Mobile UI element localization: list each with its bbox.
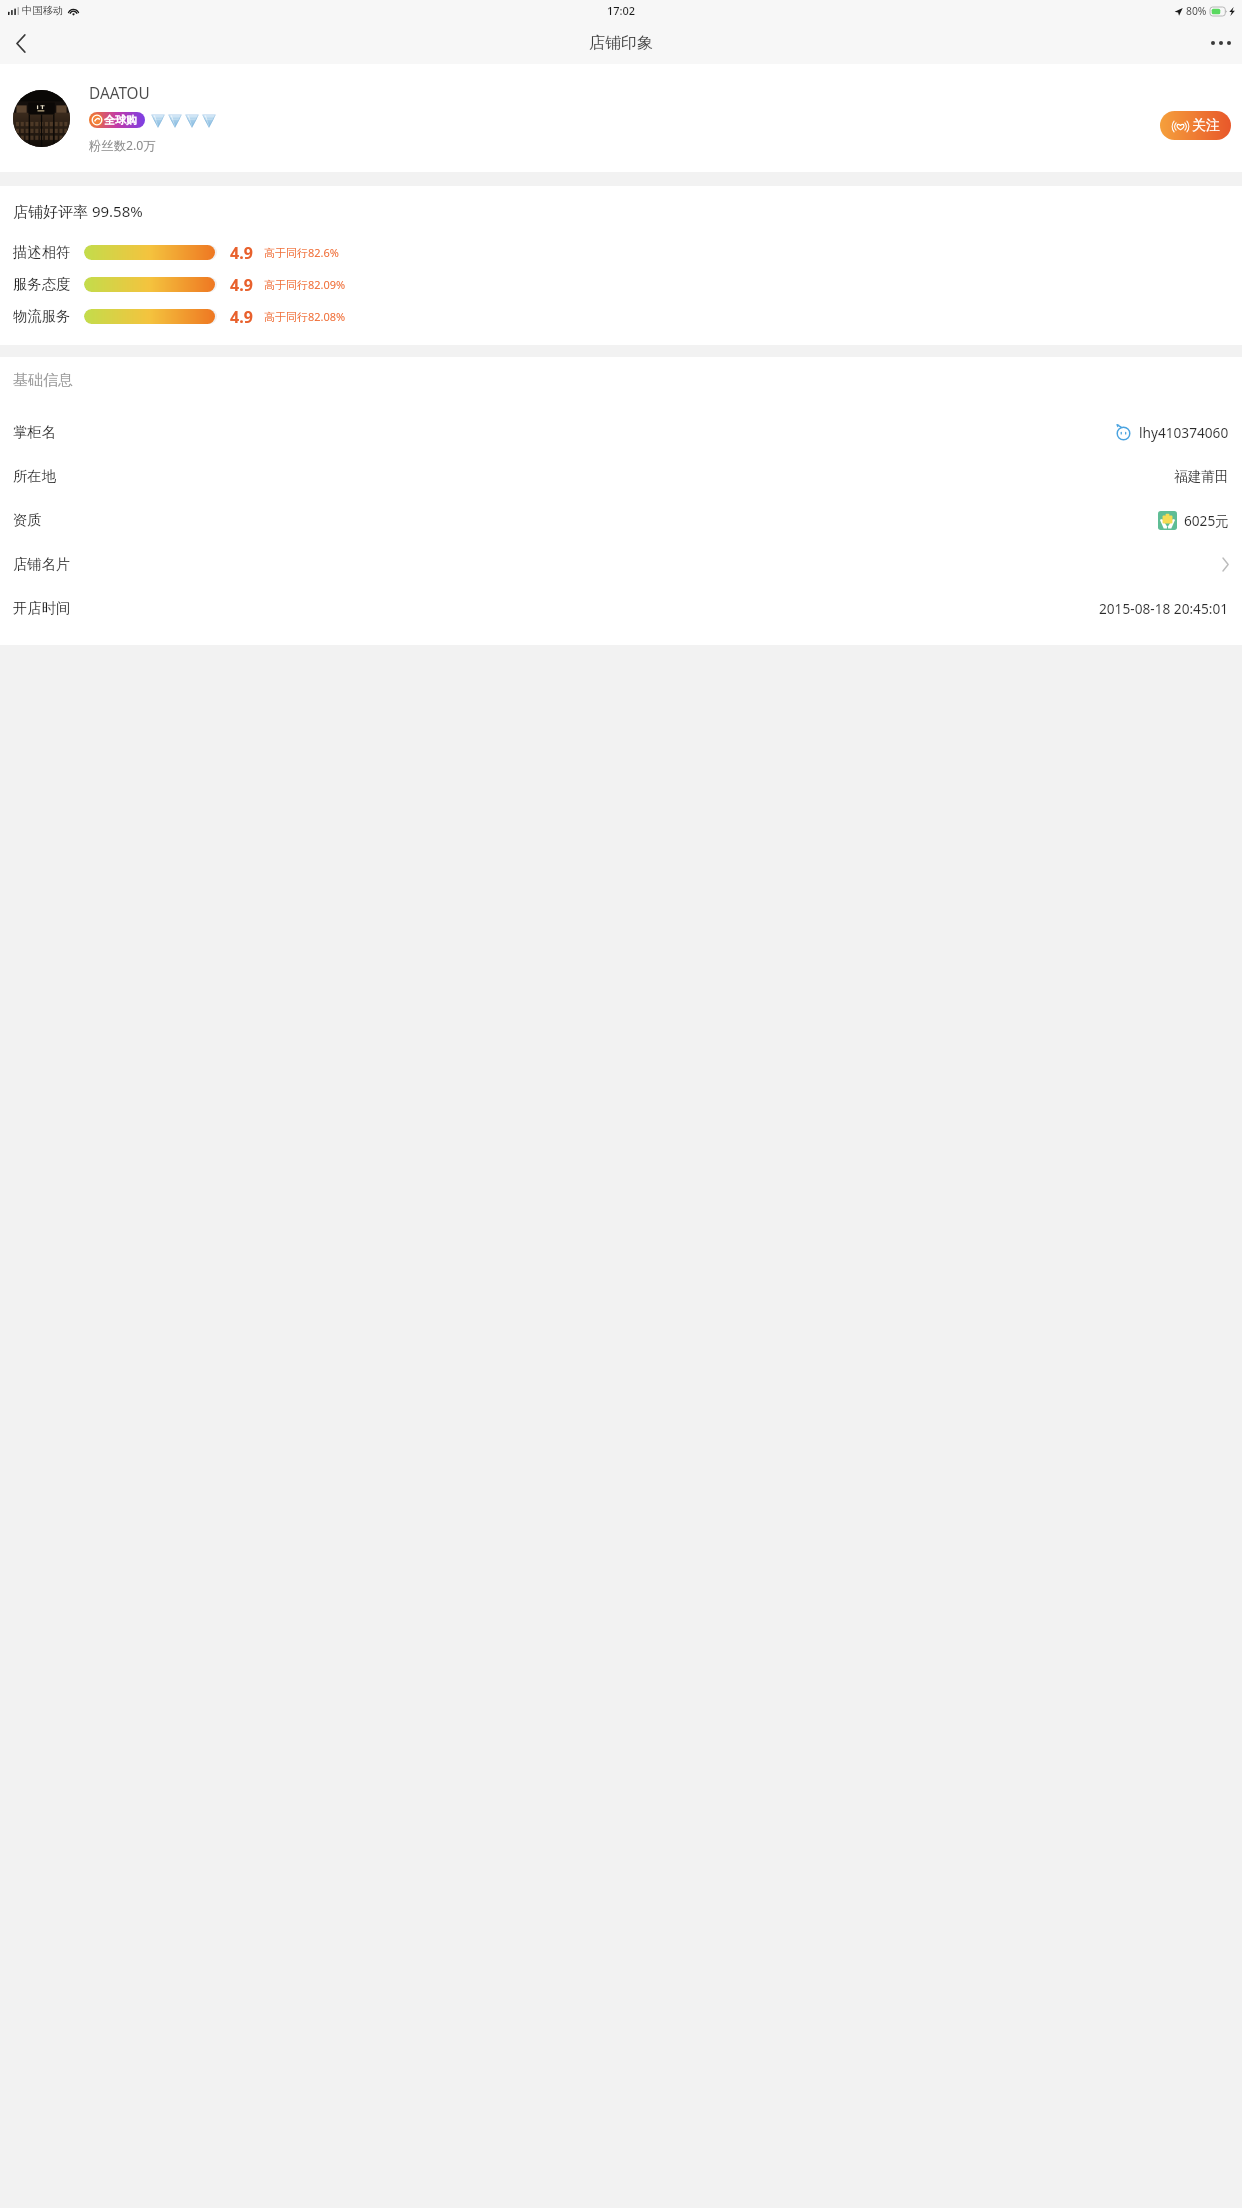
staticText: 6025元	[1184, 511, 1229, 530]
staticText: 2015-08-18 20:45:01	[1099, 599, 1229, 618]
staticText: 4.9	[230, 274, 253, 294]
staticText: 店铺印象	[589, 33, 653, 53]
button[interactable]: 店铺名片	[0, 542, 1242, 586]
staticText: DAATOU	[89, 83, 150, 104]
button[interactable]: Back	[5, 27, 37, 59]
staticText: 掌柜名	[13, 423, 56, 441]
button[interactable]: 掌柜名	[0, 410, 1242, 454]
button[interactable]: 描述相符	[0, 242, 1242, 262]
staticText: 店铺好评率 99.58%	[13, 201, 143, 221]
staticText: 所在地	[13, 467, 56, 485]
staticText: 基础信息	[13, 371, 73, 390]
staticText: 4.9	[230, 242, 253, 262]
button[interactable]: 服务态度	[0, 274, 1242, 294]
button[interactable]: 所在地	[0, 454, 1242, 498]
button[interactable]: 关注	[1160, 111, 1231, 140]
staticText: 4.9	[230, 306, 253, 326]
staticText: lhy410374060	[1139, 423, 1229, 442]
staticText: 开店时间	[13, 599, 71, 617]
staticText: 服务态度	[13, 275, 71, 293]
staticText: 店铺名片	[13, 555, 71, 573]
staticText: 高于同行82.08%	[264, 309, 346, 324]
staticText: 全球购	[104, 113, 137, 127]
button[interactable]: Shop avatar	[13, 90, 70, 147]
staticText: 80%	[1186, 4, 1207, 18]
button[interactable]: 物流服务	[0, 306, 1242, 326]
staticText: 粉丝数2.0万	[89, 137, 156, 154]
staticText: 资质	[13, 511, 42, 529]
staticText: 高于同行82.6%	[264, 245, 339, 260]
staticText: 物流服务	[13, 307, 71, 325]
button[interactable]: 资质	[0, 498, 1242, 542]
staticText: 描述相符	[13, 243, 71, 261]
staticText: 关注	[1192, 117, 1220, 135]
staticText: 福建莆田	[1174, 468, 1229, 485]
staticText: 高于同行82.09%	[264, 277, 346, 292]
staticText: 17:02	[607, 3, 636, 18]
button[interactable]: More options	[1205, 27, 1237, 59]
staticText: 中国移动	[22, 4, 64, 17]
button[interactable]: 开店时间	[0, 586, 1242, 630]
button[interactable]: 全球购	[89, 112, 145, 128]
